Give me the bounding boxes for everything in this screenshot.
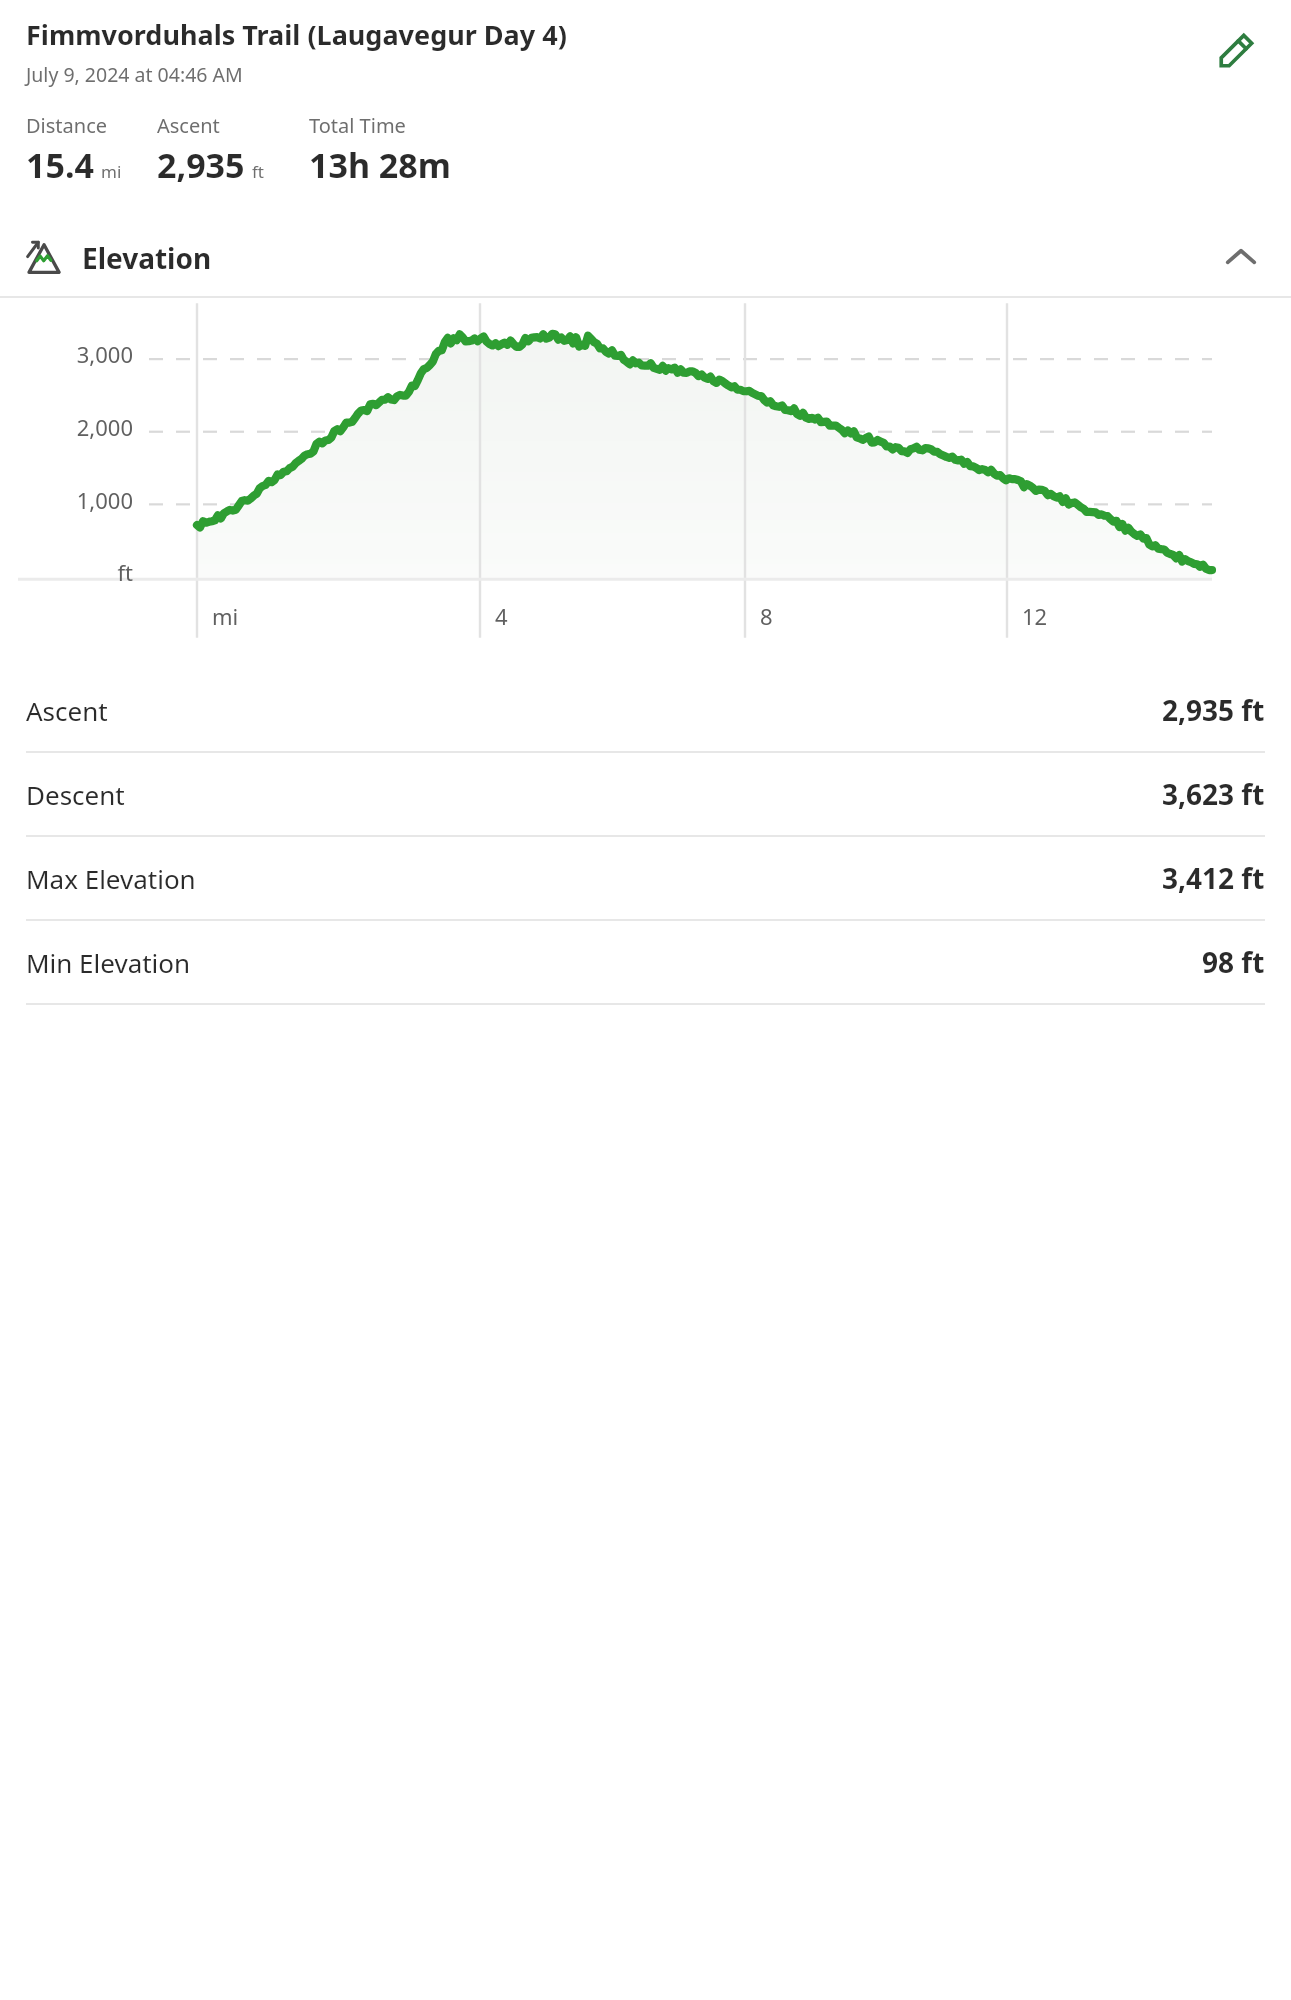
button[interactable]: Descent	[0, 753, 1291, 835]
staticText: 98 ft	[1202, 943, 1265, 981]
other: Collapse	[1219, 236, 1263, 280]
staticText: Min Elevation	[26, 945, 191, 980]
staticText: 3,623 ft	[1162, 775, 1265, 813]
staticText: Ascent	[157, 112, 220, 139]
staticText: 2,935 ft	[1162, 691, 1265, 729]
staticText: mi	[101, 160, 122, 183]
staticText: Total Time	[309, 112, 406, 139]
staticText: Descent	[26, 777, 125, 812]
button[interactable]: Ascent	[0, 669, 1291, 751]
staticText: 4	[495, 601, 508, 631]
staticText: Fimmvorduhals Trail (Laugavegur Day 4)	[26, 16, 567, 53]
staticText: ft	[41, 557, 133, 587]
staticText: Distance	[26, 112, 108, 139]
staticText: Max Elevation	[26, 861, 196, 896]
staticText: 1,000	[41, 485, 133, 515]
button[interactable]: Max Elevation	[0, 837, 1291, 919]
staticText: Ascent	[26, 693, 108, 728]
staticText: 3,000	[41, 339, 133, 369]
staticText: 12	[1022, 601, 1048, 631]
staticText: 2,935	[157, 142, 245, 188]
staticText: 2,000	[41, 412, 133, 442]
button[interactable]: Edit name	[1209, 22, 1265, 78]
button[interactable]: Elevation	[0, 220, 1291, 296]
staticText: Elevation	[82, 239, 212, 277]
staticText: 8	[760, 601, 773, 631]
staticText: 15.4	[26, 142, 94, 188]
staticText: 13h 28m	[309, 142, 451, 188]
staticText: ft	[252, 160, 264, 183]
staticText: mi	[212, 601, 239, 631]
button[interactable]: Min Elevation	[0, 921, 1291, 1003]
staticText: July 9, 2024 at 04:46 AM	[26, 61, 243, 88]
staticText: 3,412 ft	[1162, 859, 1265, 897]
